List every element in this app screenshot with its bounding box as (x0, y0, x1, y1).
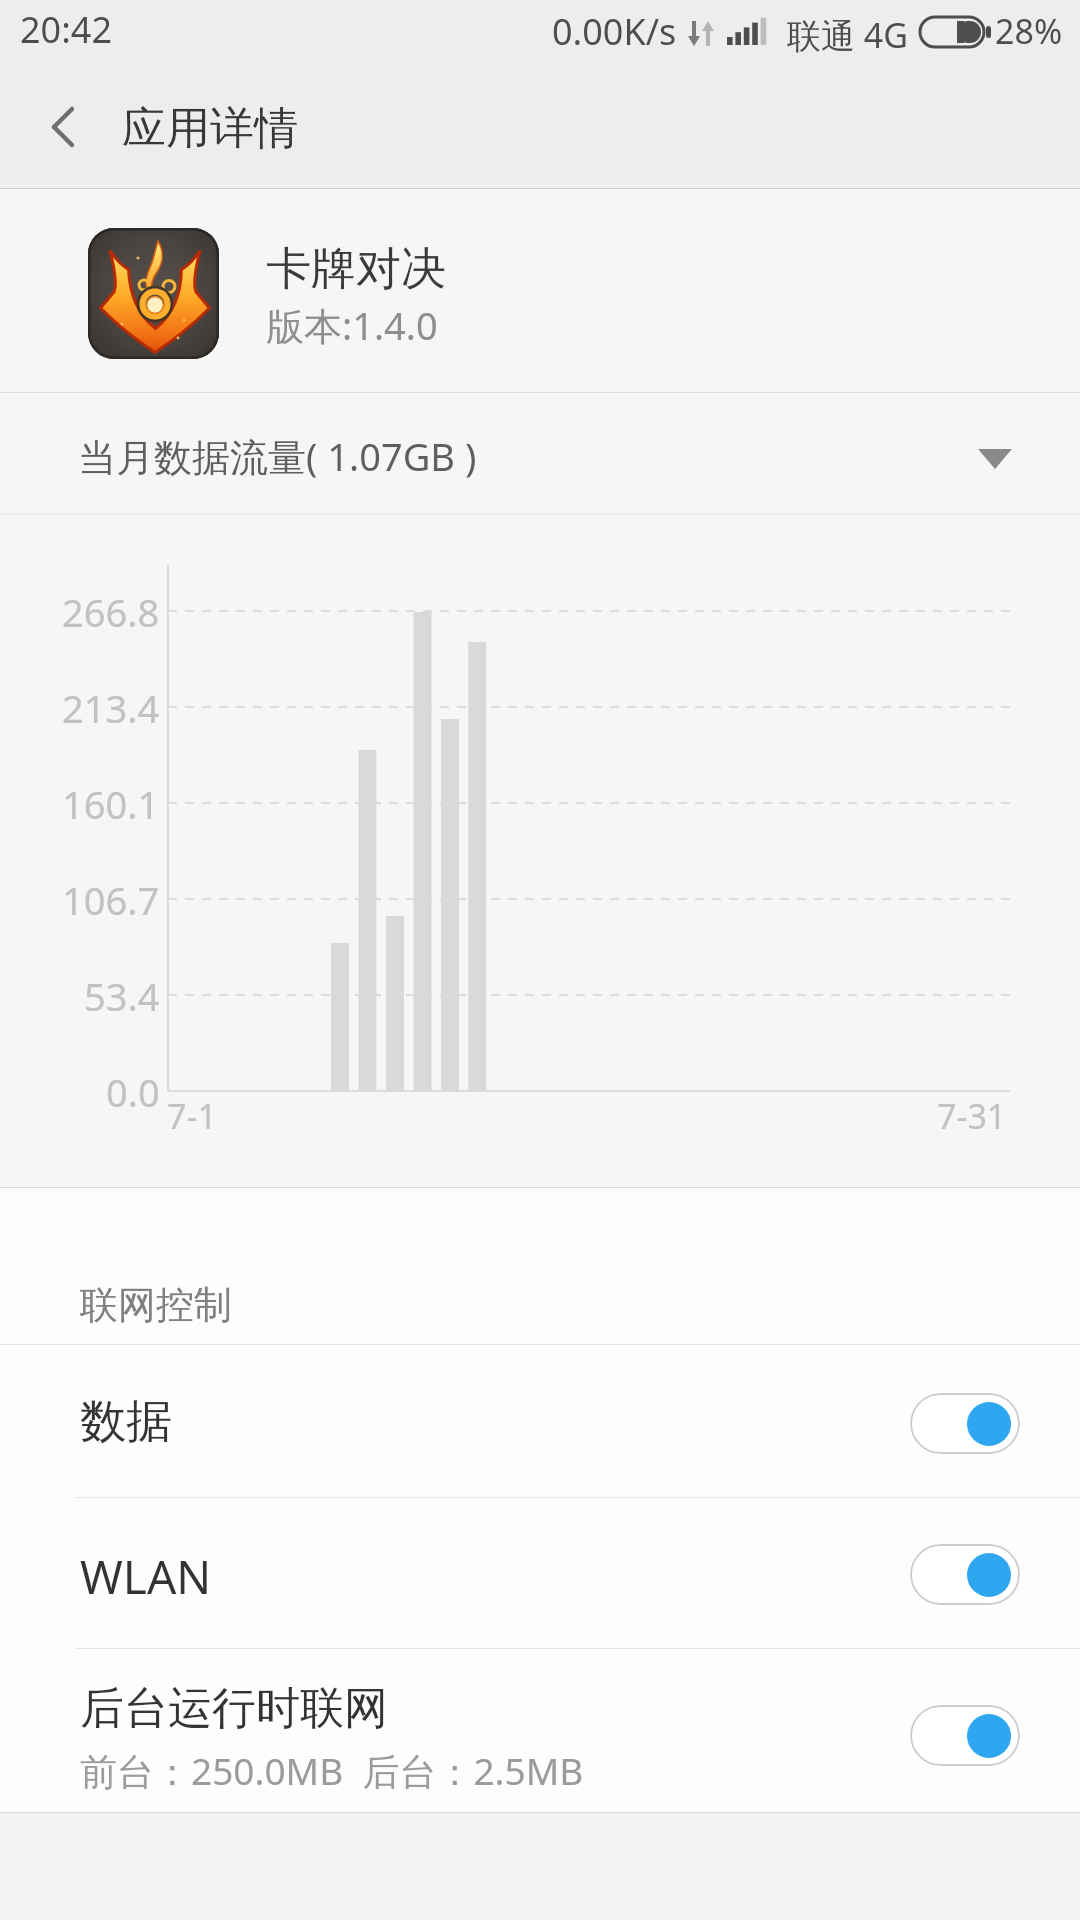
button[interactable] (910, 1393, 1020, 1454)
staticText: 应用详情 (122, 101, 298, 156)
staticText: 前台：250.0MB 后台：2.5MB (80, 1745, 584, 1796)
staticText: 213.4 (62, 682, 160, 732)
staticText: 7-1 (167, 1093, 217, 1139)
button[interactable] (910, 1544, 1020, 1605)
staticText: 卡牌对决 (266, 241, 446, 298)
button[interactable]: 当月数据流量( 1.07GB ) (0, 393, 1080, 514)
staticText: 后台运行时联网 (80, 1681, 388, 1736)
staticText: 数据 (80, 1393, 172, 1451)
staticText: 0.0 (106, 1066, 160, 1116)
staticText: 28% (995, 8, 1063, 54)
staticText: 0.00K/s (552, 7, 677, 56)
button[interactable]: 数据 (0, 1345, 1080, 1497)
staticText: 联通 4G (787, 12, 909, 58)
button[interactable] (910, 1705, 1020, 1766)
button[interactable] (28, 95, 98, 171)
staticText: 53.4 (84, 970, 160, 1020)
staticText: 160.1 (62, 778, 160, 828)
staticText: 106.7 (62, 874, 160, 924)
button[interactable]: WLAN (0, 1498, 1080, 1648)
staticText: 7-31 (937, 1093, 1007, 1139)
staticText: 版本:1.4.0 (266, 299, 438, 351)
staticText: 20:42 (20, 5, 113, 54)
staticText: WLAN (80, 1545, 212, 1608)
button[interactable] (88, 228, 219, 359)
staticText: 联网控制 (80, 1281, 232, 1329)
button[interactable]: 后台运行时联网 (0, 1649, 1080, 1812)
staticText: 266.8 (62, 586, 160, 636)
staticText: 当月数据流量( 1.07GB ) (78, 430, 477, 482)
